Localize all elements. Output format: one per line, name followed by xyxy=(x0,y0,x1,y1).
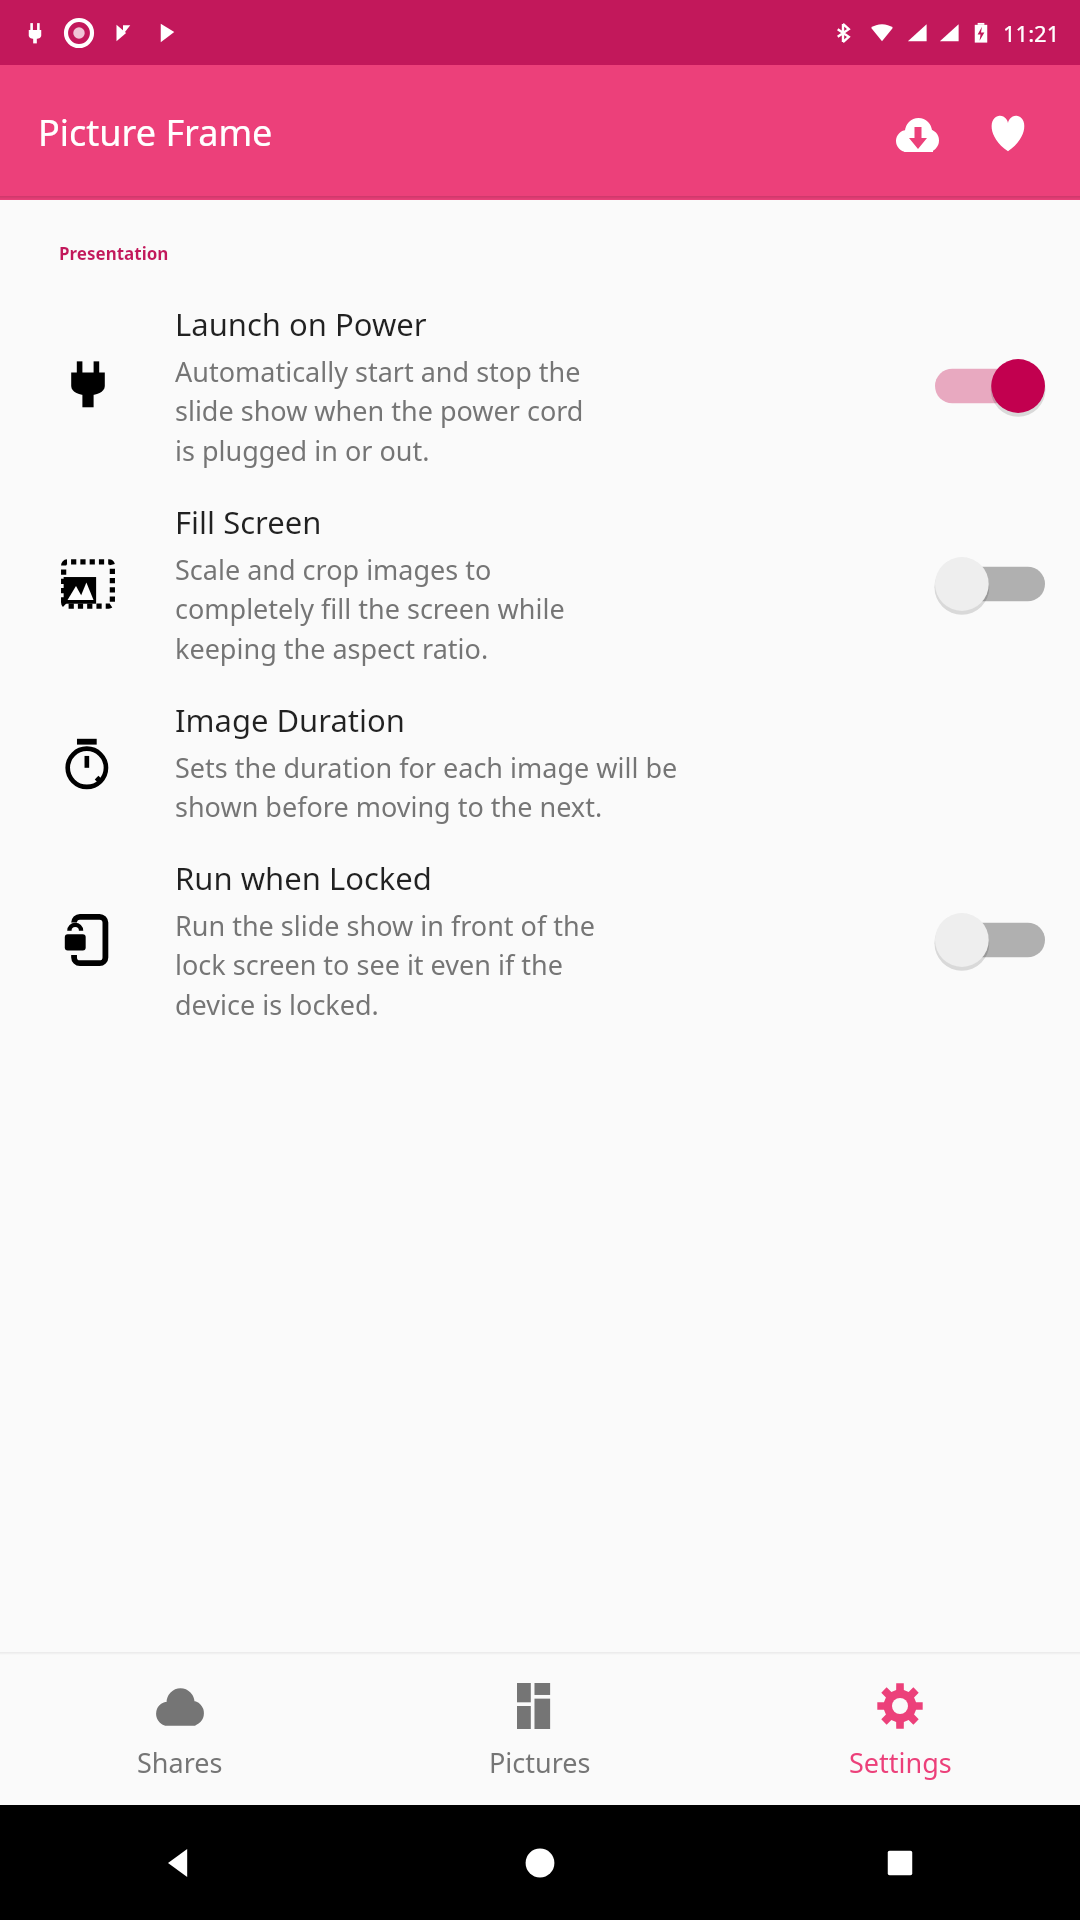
button[interactable]: Home xyxy=(360,1805,720,1920)
button[interactable]: Toggle off xyxy=(930,905,1050,975)
staticText: 11:21 xyxy=(1003,18,1060,48)
staticText: Image Duration xyxy=(175,699,405,741)
staticText: Shares xyxy=(137,1744,223,1781)
button[interactable]: Launch on Power xyxy=(0,291,1080,489)
button[interactable]: Recents xyxy=(720,1805,1080,1920)
staticText: Pictures xyxy=(489,1744,591,1781)
staticText: Launch on Power xyxy=(175,303,427,345)
staticText: Run the slide show in front of the lock … xyxy=(175,907,595,1023)
button[interactable]: Image Duration xyxy=(0,687,1080,845)
button[interactable]: Toggle off xyxy=(930,549,1050,619)
button[interactable]: Toggle on xyxy=(930,351,1050,421)
staticText: Picture Frame xyxy=(38,108,273,157)
button[interactable]: Fill Screen xyxy=(0,489,1080,687)
staticText: Automatically start and stop the slide s… xyxy=(175,353,584,469)
staticText: Settings xyxy=(849,1744,952,1781)
staticText: Scale and crop images to completely fill… xyxy=(175,551,565,667)
button[interactable]: Favorite xyxy=(970,95,1046,171)
button[interactable]: Run when Locked xyxy=(0,845,1080,1043)
staticText: Sets the duration for each image will be… xyxy=(175,749,678,825)
button[interactable]: Back xyxy=(0,1805,360,1920)
button[interactable]: Settings xyxy=(720,1655,1080,1805)
button[interactable]: Pictures xyxy=(360,1655,720,1805)
staticText: Presentation xyxy=(59,242,169,265)
button[interactable]: Shares xyxy=(0,1655,360,1805)
button[interactable]: Download xyxy=(880,95,956,171)
staticText: Run when Locked xyxy=(175,857,432,899)
staticText: Fill Screen xyxy=(175,501,322,543)
